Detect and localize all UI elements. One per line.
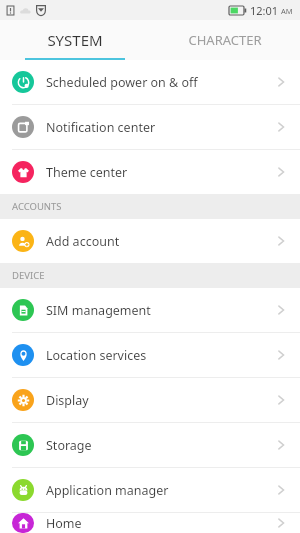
button[interactable]: Add account	[0, 219, 300, 263]
button[interactable]: SIM management	[0, 288, 300, 332]
button[interactable]: Notification center	[0, 105, 300, 149]
button[interactable]: Scheduled power on & off	[0, 60, 300, 104]
staticText: SIM management	[46, 302, 274, 319]
staticText: CHARACTER	[188, 31, 262, 49]
button[interactable]: Application manager	[0, 468, 300, 512]
staticText: 12:01	[250, 3, 279, 18]
staticText: Application manager	[46, 482, 274, 499]
staticText: Add account	[46, 233, 274, 250]
staticText: Location services	[46, 347, 274, 364]
button[interactable]: Home	[0, 513, 300, 533]
button[interactable]: Location services	[0, 333, 300, 377]
staticText: Storage	[46, 437, 274, 454]
staticText: Notification center	[46, 119, 274, 136]
button[interactable]: SYSTEM	[0, 20, 150, 60]
button[interactable]: Storage	[0, 423, 300, 467]
staticText: Scheduled power on & off	[46, 74, 274, 91]
staticText: SYSTEM	[47, 30, 103, 50]
staticText: AM	[281, 6, 293, 16]
button[interactable]: Theme center	[0, 150, 300, 194]
staticText: ACCOUNTS	[12, 200, 62, 213]
staticText: Home	[46, 515, 274, 532]
button[interactable]: CHARACTER	[150, 20, 300, 60]
staticText: Display	[46, 392, 274, 409]
staticText: DEVICE	[12, 269, 45, 282]
staticText: Theme center	[46, 164, 274, 181]
button[interactable]: Display	[0, 378, 300, 422]
